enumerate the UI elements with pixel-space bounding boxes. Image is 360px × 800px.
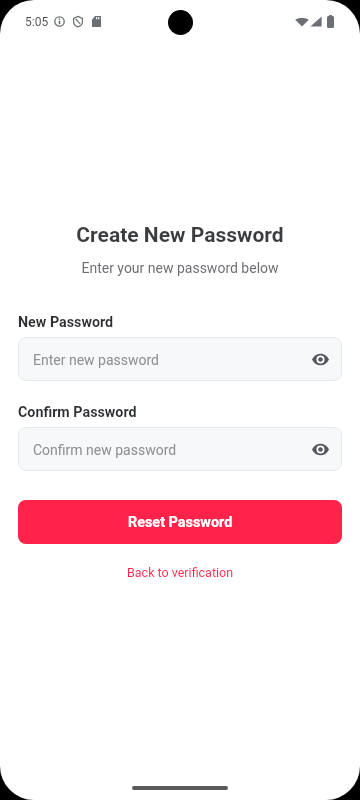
staticText: Create New Password (18, 223, 342, 248)
button[interactable]: Show password (304, 433, 336, 465)
button[interactable]: Show password (304, 343, 336, 375)
button[interactable]: Reset Password (18, 500, 342, 544)
staticText: Confirm Password (18, 404, 137, 421)
staticText: 5:05 (25, 15, 49, 29)
button[interactable]: Confirm new password (18, 427, 342, 471)
button[interactable]: Enter new password (18, 337, 342, 381)
staticText: Enter your new password below (18, 260, 342, 276)
staticText: Enter new password (33, 352, 159, 368)
staticText: Reset Password (128, 514, 233, 531)
staticText: Confirm new password (33, 442, 177, 458)
staticText: New Password (18, 314, 114, 331)
button[interactable]: Back to verification (119, 561, 242, 584)
